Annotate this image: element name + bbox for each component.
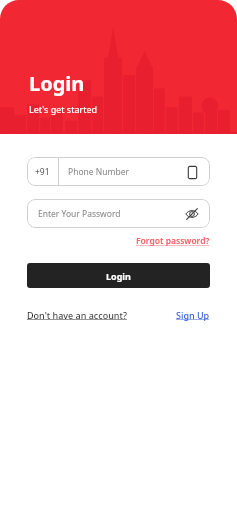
staticText: Let's get started <box>29 103 98 115</box>
button[interactable]: Show password <box>184 206 200 222</box>
staticText: Login <box>29 70 85 97</box>
staticText: Login <box>106 270 131 282</box>
button[interactable]: Don't have an account? <box>27 309 127 321</box>
staticText: Phone Number <box>68 166 129 178</box>
staticText: Sign Up <box>176 309 210 321</box>
button[interactable]: Login <box>27 263 210 288</box>
button[interactable]: Forgot password? <box>136 235 210 247</box>
other: Phone <box>184 164 200 180</box>
button[interactable]: +91 <box>27 157 210 186</box>
staticText: Don't have an account? <box>27 309 127 321</box>
staticText: +91 <box>35 166 50 178</box>
button[interactable]: Enter Your Password <box>27 199 210 228</box>
staticText: Forgot password? <box>136 235 210 247</box>
staticText: Enter Your Password <box>38 208 121 220</box>
button[interactable]: Sign Up <box>176 309 210 321</box>
